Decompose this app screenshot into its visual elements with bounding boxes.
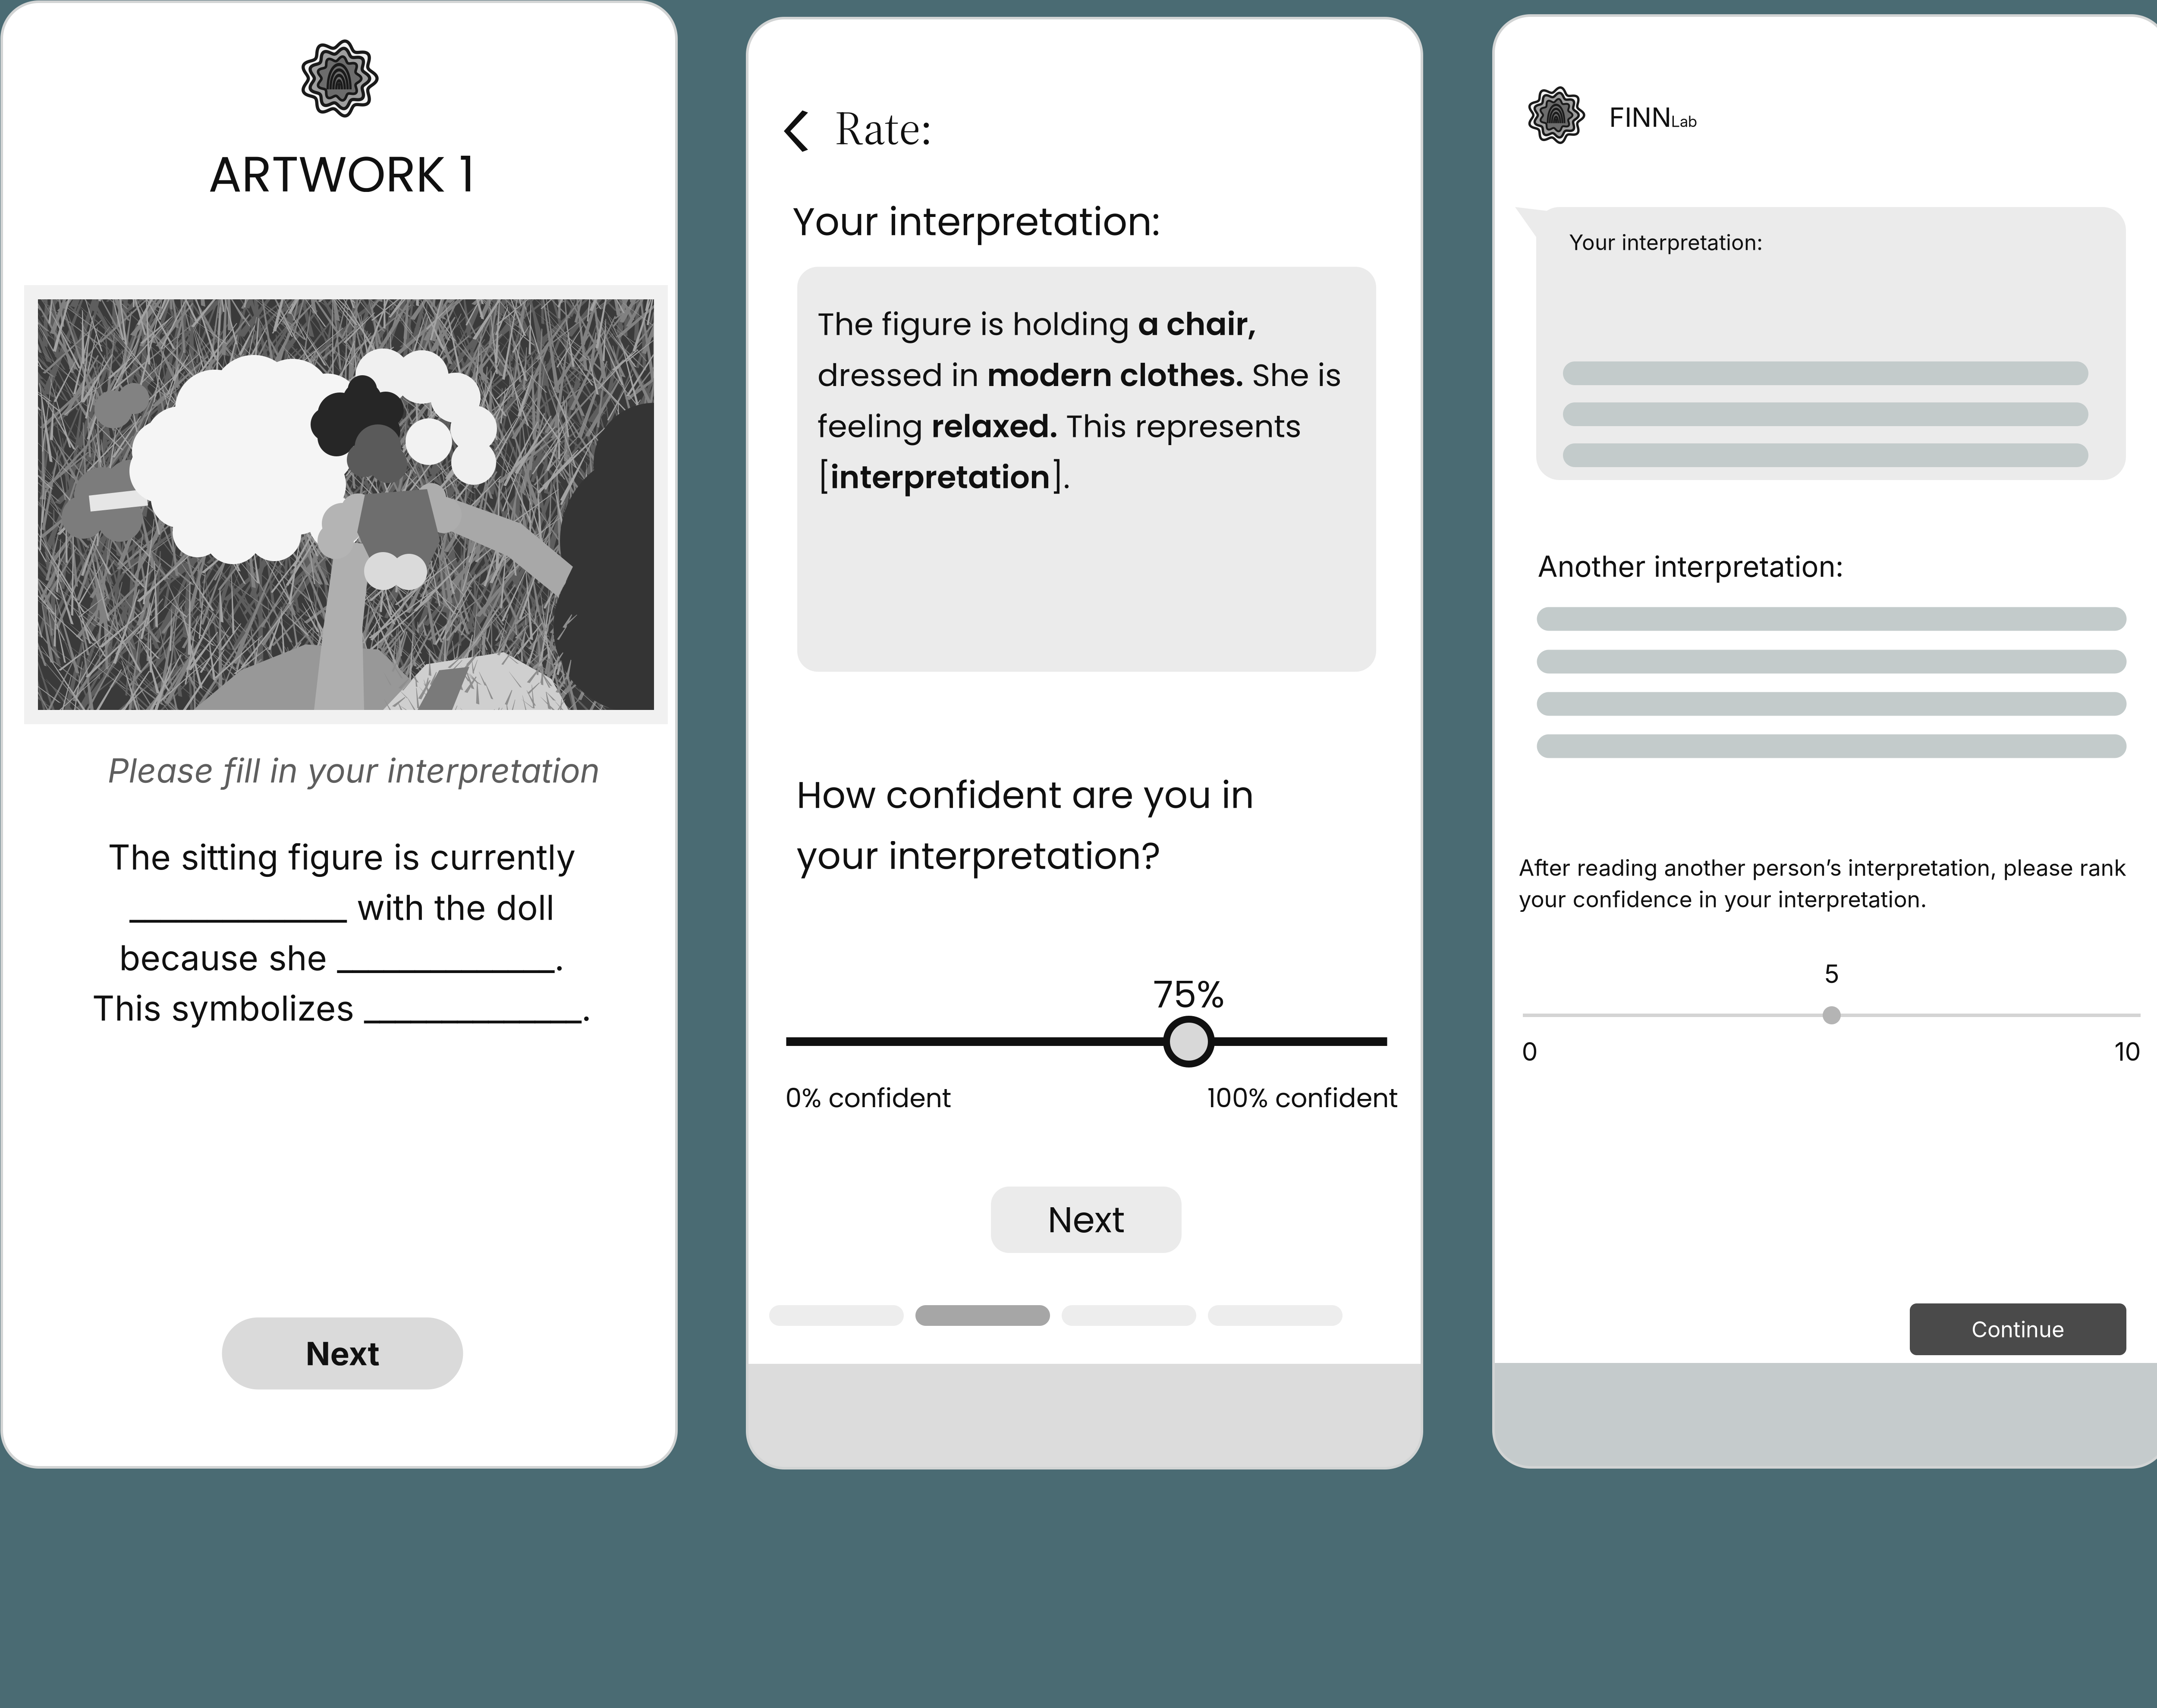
staticText: Continue <box>1971 1316 2065 1343</box>
staticText: FINNLab <box>1609 102 1697 133</box>
staticText: Next <box>306 1334 379 1373</box>
staticText: 0% confident <box>785 1080 951 1116</box>
staticText: Rate: <box>835 95 932 160</box>
button[interactable]: Back <box>784 110 809 152</box>
staticText: Your interpretation: <box>1569 229 1763 255</box>
button[interactable]: Continue <box>1910 1303 2126 1355</box>
staticText: 10 <box>2115 1036 2141 1067</box>
staticText: After reading another person’s interpret… <box>1519 854 2127 913</box>
staticText: Please fill in your interpretation <box>108 750 600 791</box>
staticText: ARTWORK 1 <box>208 140 475 209</box>
staticText: Your interpretation: <box>792 195 1160 249</box>
staticText: How confident are you in your interpreta… <box>797 769 1254 882</box>
staticText: The figure is holding a chair, dressed i… <box>818 303 1342 498</box>
staticText: 75% <box>1153 969 1225 1020</box>
button[interactable]: Next <box>222 1317 463 1389</box>
staticText: Next <box>1048 1195 1125 1245</box>
staticText: 5 <box>1824 959 1839 989</box>
staticText: Another interpretation: <box>1538 549 1844 584</box>
button[interactable]: Next <box>991 1187 1182 1253</box>
staticText: 0 <box>1522 1036 1538 1067</box>
staticText: The sitting figure is currently ________… <box>92 836 591 1029</box>
staticText: 100% confident <box>1207 1080 1398 1116</box>
